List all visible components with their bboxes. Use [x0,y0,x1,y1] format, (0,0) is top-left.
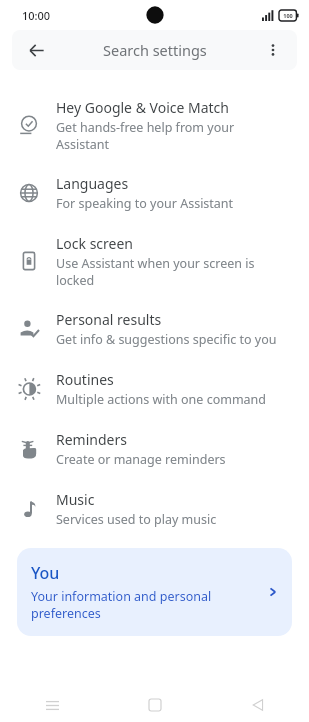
staticText: 10:00 [22,8,51,23]
staticText: Hey Google & Voice Match [56,98,229,117]
staticText: Your information and personal preference… [31,588,212,622]
button[interactable]: Hey Google & Voice Match [0,98,309,152]
staticText: You [31,562,60,584]
button[interactable]: Back [12,30,297,70]
button[interactable]: Routines [0,370,309,408]
button[interactable]: Reminders [0,430,309,468]
staticText: Use Assistant when your screen is locked [56,255,255,288]
button[interactable]: Lock screen [0,234,309,288]
button[interactable]: You [17,548,292,636]
staticText: Reminders [56,430,127,449]
staticText: Create or manage reminders [56,451,226,468]
staticText: 100 [283,12,293,19]
staticText: Routines [56,370,114,389]
button[interactable]: Languages [0,174,309,212]
staticText: Languages [56,174,129,193]
staticText: Get info & suggestions specific to you [56,331,277,348]
button[interactable]: More options [257,34,289,66]
staticText: Music [56,490,95,509]
button[interactable]: Back [240,688,276,722]
staticText: Personal results [56,310,162,329]
button[interactable]: Back [20,34,52,66]
staticText: For speaking to your Assistant [56,195,234,212]
staticText: Lock screen [56,234,134,253]
button[interactable]: Recent apps [34,688,70,722]
staticText: Multiple actions with one command [56,391,267,408]
staticText: Get hands-free help from your Assistant [56,119,235,152]
button[interactable]: Personal results [0,310,309,348]
staticText: Services used to play music [56,511,217,528]
staticText: Search settings [103,40,207,60]
button[interactable]: Home [137,688,173,722]
button[interactable]: Music [0,490,309,528]
